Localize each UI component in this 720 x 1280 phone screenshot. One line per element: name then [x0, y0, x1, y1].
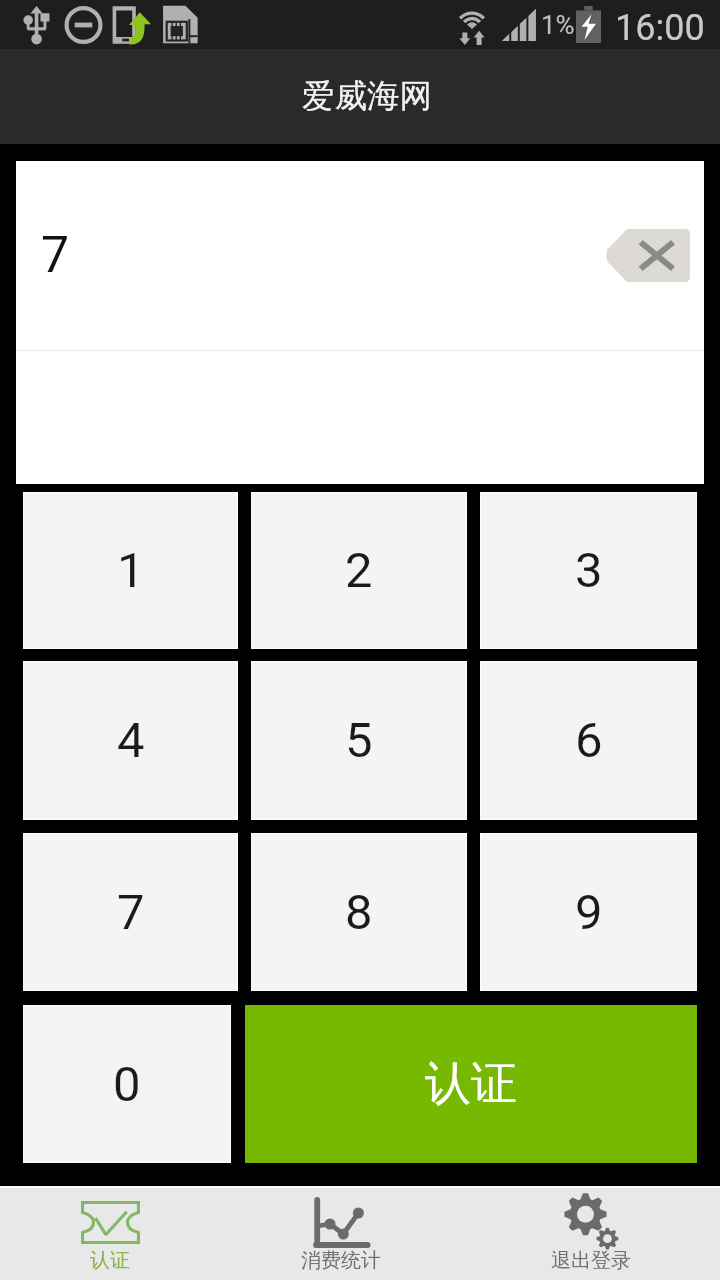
staticText: 7: [117, 884, 145, 941]
staticText: 认证: [425, 1055, 517, 1113]
button[interactable]: 5: [252, 662, 466, 819]
staticText: 4: [117, 712, 145, 769]
staticText: 退出登录: [551, 1248, 631, 1273]
staticText: 0: [113, 1056, 141, 1113]
button[interactable]: 认证: [245, 1005, 697, 1163]
staticText: 9: [575, 884, 603, 941]
staticText: 爱威海网: [302, 76, 432, 117]
staticText: 认证: [90, 1248, 130, 1273]
staticText: 6: [575, 712, 603, 769]
button[interactable]: Delete: [605, 229, 690, 282]
button[interactable]: 4: [24, 662, 237, 819]
staticText: 消费统计: [301, 1248, 381, 1273]
staticText: 5: [345, 712, 373, 769]
button[interactable]: 1: [24, 493, 237, 648]
button[interactable]: 2: [252, 493, 466, 648]
button[interactable]: 8: [252, 834, 466, 990]
staticText: 3: [575, 542, 603, 599]
staticText: 1: [117, 542, 145, 599]
button[interactable]: 退出登录: [481, 1186, 720, 1280]
button[interactable]: 消费统计: [231, 1186, 471, 1280]
staticText: 1%: [541, 10, 575, 40]
staticText: 2: [345, 542, 373, 599]
staticText: 7: [41, 226, 70, 285]
staticText: 16:00: [615, 7, 705, 49]
button[interactable]: 7: [24, 834, 237, 990]
button[interactable]: 3: [481, 493, 696, 648]
button[interactable]: 6: [481, 662, 696, 819]
button[interactable]: 9: [481, 834, 696, 990]
staticText: 8: [345, 884, 373, 941]
button[interactable]: 0: [24, 1006, 230, 1162]
button[interactable]: 认证: [0, 1186, 240, 1280]
